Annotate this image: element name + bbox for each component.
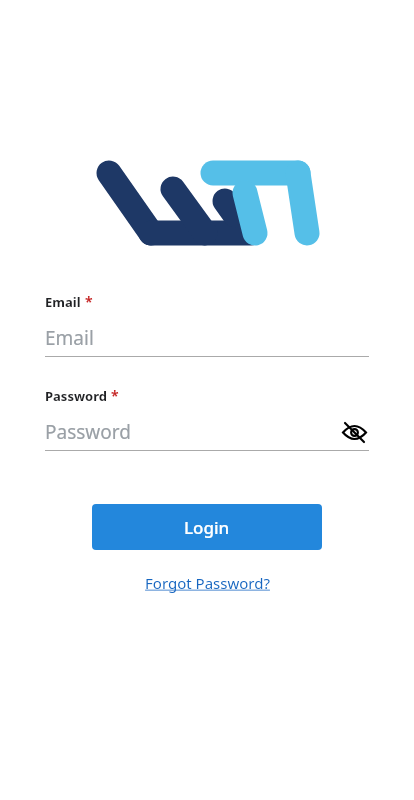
staticText: * <box>85 292 93 311</box>
staticText: * <box>111 386 119 405</box>
staticText: Forgot Password? <box>145 573 270 593</box>
staticText: Email <box>45 325 94 351</box>
staticText: Password <box>45 387 107 405</box>
button[interactable]: Password <box>45 419 339 445</box>
staticText: Password <box>45 419 131 445</box>
button[interactable]: Forgot Password? <box>139 571 276 595</box>
staticText: Login <box>184 516 230 539</box>
staticText: Email <box>45 293 81 311</box>
button[interactable]: Email <box>45 323 369 353</box>
button[interactable]: Show password <box>339 417 369 447</box>
button[interactable]: Login <box>92 504 322 550</box>
